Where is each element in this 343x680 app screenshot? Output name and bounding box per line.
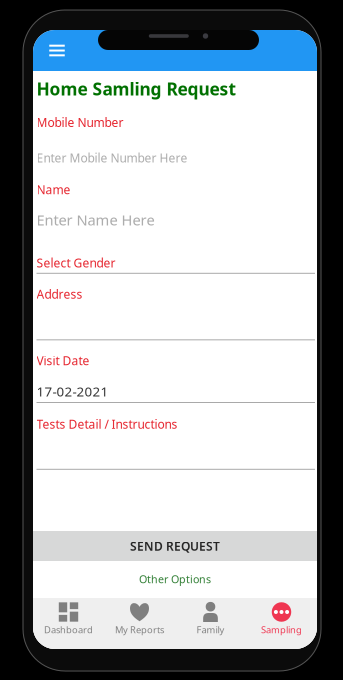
- button[interactable]: Select Gender: [36, 248, 313, 278]
- staticText: Visit Date: [36, 353, 89, 369]
- button[interactable]: Open navigation menu: [42, 30, 72, 71]
- staticText: Dashboard: [44, 623, 93, 636]
- staticText: Enter Name Here: [36, 210, 154, 230]
- button[interactable]: Tests Detail / Instructions: [36, 409, 313, 439]
- button[interactable]: Sampling: [246, 598, 317, 649]
- staticText: Tests Detail / Instructions: [36, 416, 177, 432]
- button[interactable]: My Reports: [104, 598, 175, 649]
- button[interactable]: SEND REQUEST: [33, 531, 317, 561]
- staticText: Other Options: [139, 572, 211, 586]
- button[interactable]: Visit Date: [36, 346, 313, 376]
- staticText: 17-02-2021: [36, 382, 108, 400]
- staticText: My Reports: [115, 623, 164, 636]
- staticText: SEND REQUEST: [130, 538, 220, 554]
- button[interactable]: Address: [36, 279, 313, 309]
- button[interactable]: [74, 592, 273, 622]
- staticText: Select Gender: [36, 255, 115, 271]
- button[interactable]: Enter Mobile Number Here: [36, 143, 313, 173]
- button[interactable]: Family: [175, 598, 246, 649]
- staticText: Name: [36, 182, 70, 198]
- staticText: Enter Mobile Number Here: [36, 150, 187, 166]
- staticText: Family: [196, 623, 224, 636]
- staticText: Mobile Number: [36, 114, 123, 130]
- staticText: Address: [36, 286, 82, 302]
- button[interactable]: Enter Name Here: [36, 205, 313, 235]
- staticText: Sampling: [261, 623, 302, 636]
- staticText: Home Samling Request: [36, 77, 236, 100]
- button[interactable]: Dashboard: [33, 598, 104, 649]
